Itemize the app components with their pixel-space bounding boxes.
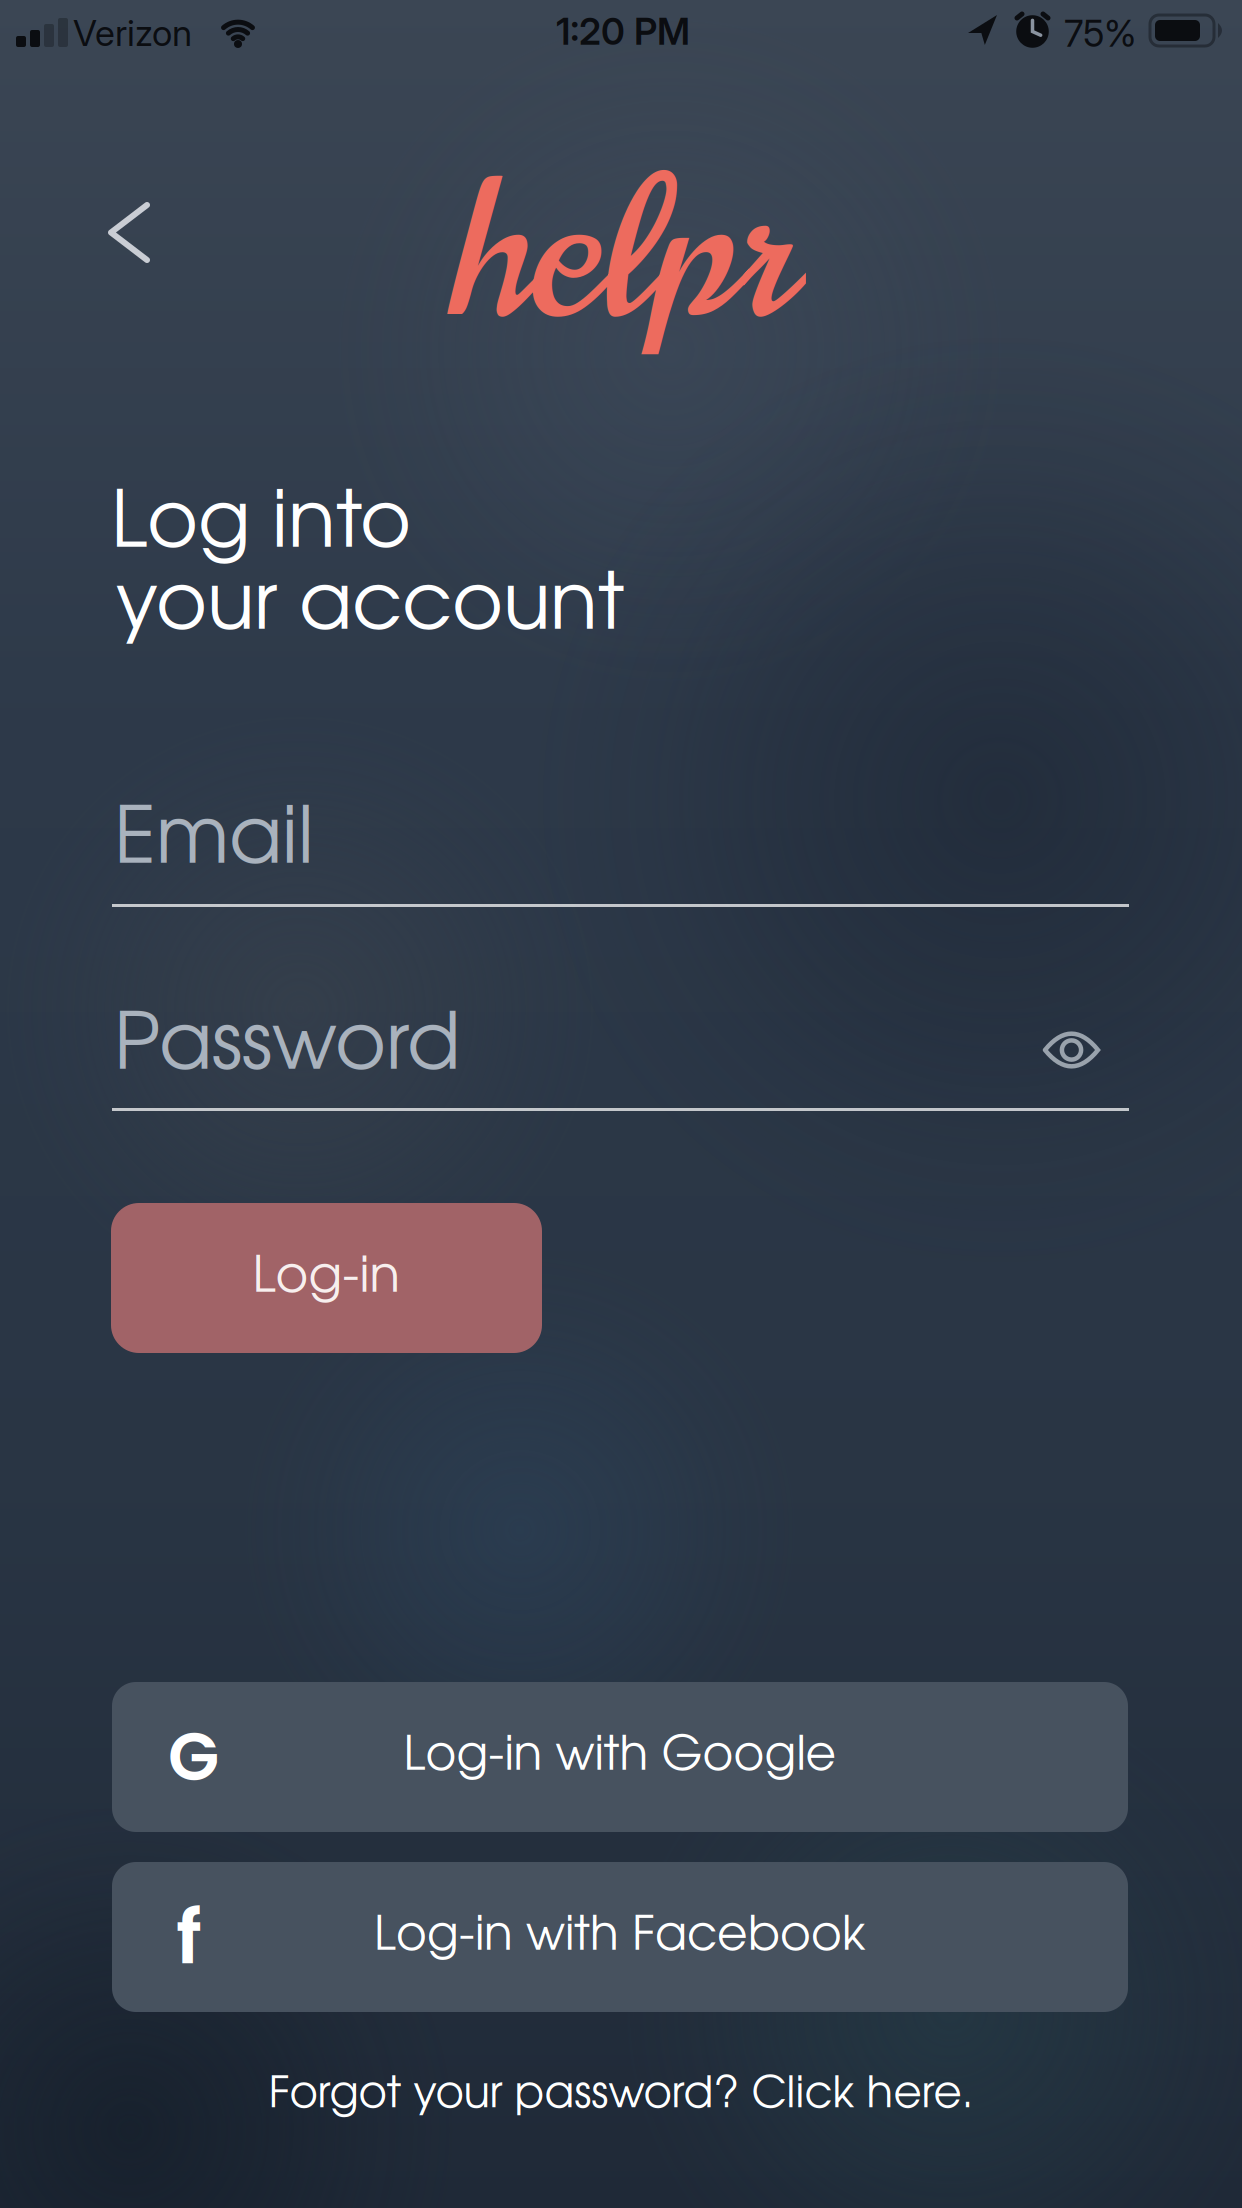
staticText: Password xyxy=(114,1011,460,1084)
staticText: f xyxy=(176,1885,202,1989)
button[interactable]: Forgot your password? Click here. xyxy=(268,2075,973,2115)
button[interactable]: Log-in with Facebook xyxy=(112,1862,1128,2012)
staticText: Email xyxy=(114,805,314,878)
button[interactable]: Log-in with Google xyxy=(112,1682,1128,1832)
button[interactable]: Show password xyxy=(1031,1020,1112,1080)
staticText: Log into xyxy=(111,489,411,562)
button[interactable]: Log-in xyxy=(111,1203,542,1353)
staticText: 75% xyxy=(1064,11,1136,56)
staticText: G xyxy=(168,1710,219,1804)
button[interactable]: Email xyxy=(112,805,1129,908)
staticText: your account xyxy=(116,571,624,644)
staticText: 1:20 PM xyxy=(556,9,690,54)
button[interactable]: Back xyxy=(91,185,167,280)
staticText: Log-in with Google xyxy=(403,1735,836,1779)
staticText: Log-in xyxy=(252,1255,400,1301)
staticText: Verizon xyxy=(73,11,192,55)
staticText: Forgot your password? Click here. xyxy=(268,2075,973,2115)
button[interactable]: Password xyxy=(112,1011,1129,1112)
staticText: Log-in with Facebook xyxy=(374,1915,866,1959)
staticText: helpr xyxy=(447,116,795,388)
